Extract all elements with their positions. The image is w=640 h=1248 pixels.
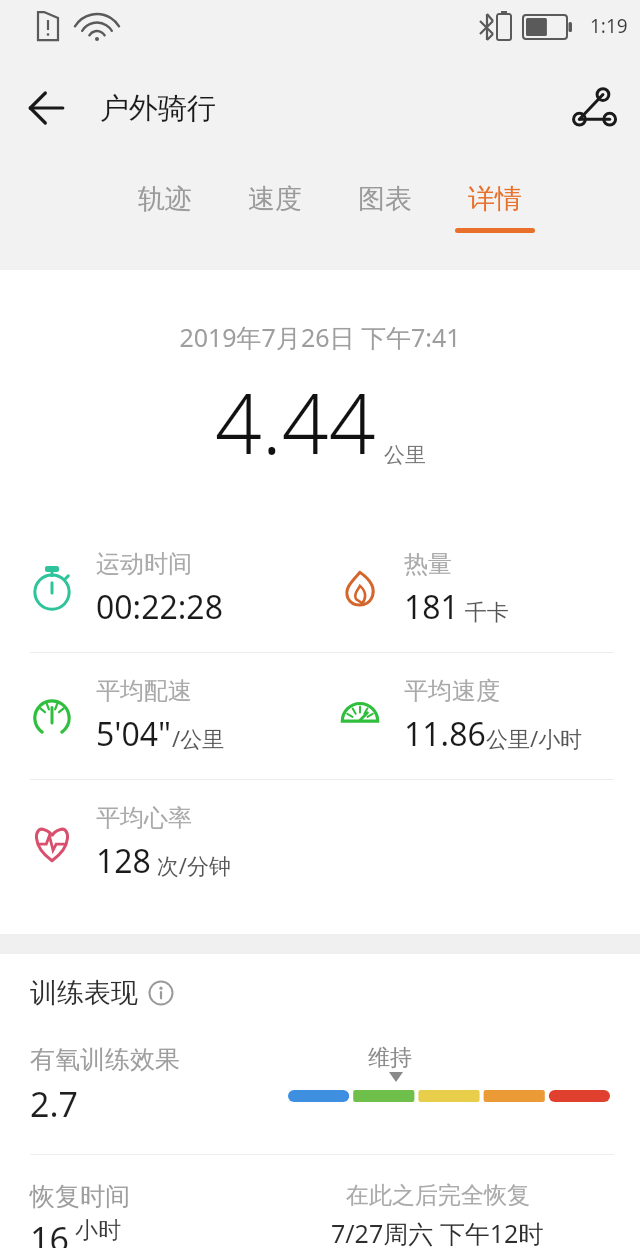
button[interactable]: 轨迹: [120, 164, 210, 228]
button[interactable]: 平均配速: [26, 653, 320, 779]
staticText: 181: [404, 585, 459, 629]
button[interactable]: 速度: [230, 164, 320, 228]
staticText: 户外骑行: [100, 90, 216, 127]
button[interactable]: 热量: [334, 526, 640, 652]
button[interactable]: 运动时间: [26, 526, 320, 652]
staticText: 00:22:28: [96, 585, 223, 629]
staticText: 有氧训练效果: [30, 1044, 180, 1075]
staticText: 在此之后完全恢复: [346, 1181, 530, 1210]
staticText: 4.44: [215, 366, 376, 478]
staticText: 恢复时间: [30, 1181, 130, 1212]
button[interactable]: Back: [18, 80, 74, 136]
staticText: 公里: [384, 442, 426, 468]
button[interactable]: 详情: [450, 164, 540, 233]
staticText: 1:19: [590, 13, 628, 39]
staticText: 热量: [404, 549, 452, 579]
staticText: 维持: [368, 1044, 412, 1072]
staticText: 7/27周六 下午12时: [331, 1216, 544, 1248]
staticText: 训练表现: [30, 976, 138, 1010]
staticText: 轨迹: [138, 182, 192, 216]
staticText: 千卡: [459, 596, 509, 626]
staticText: 速度: [248, 182, 302, 216]
button[interactable]: Share: [566, 80, 622, 136]
staticText: 16: [30, 1216, 69, 1248]
staticText: 11.86: [404, 712, 486, 756]
staticText: /公里: [172, 723, 225, 753]
staticText: 运动时间: [96, 549, 192, 579]
staticText: 2019年7月26日 下午7:41: [0, 320, 640, 354]
staticText: 详情: [468, 182, 522, 216]
staticText: 平均配速: [96, 676, 192, 706]
staticText: 公里/小时: [486, 723, 583, 753]
staticText: 5'04": [96, 712, 172, 756]
staticText: 平均速度: [404, 676, 500, 706]
staticText: 128: [96, 839, 151, 883]
staticText: 次/分钟: [151, 850, 231, 880]
button[interactable]: 图表: [340, 164, 430, 228]
button[interactable]: Info: [148, 980, 174, 1006]
staticText: 平均心率: [96, 803, 192, 833]
staticText: 图表: [358, 182, 412, 216]
button[interactable]: 平均心率: [26, 780, 320, 906]
staticText: 2.7: [30, 1081, 79, 1127]
staticText: 小时: [75, 1216, 121, 1245]
button[interactable]: 平均速度: [334, 653, 640, 779]
